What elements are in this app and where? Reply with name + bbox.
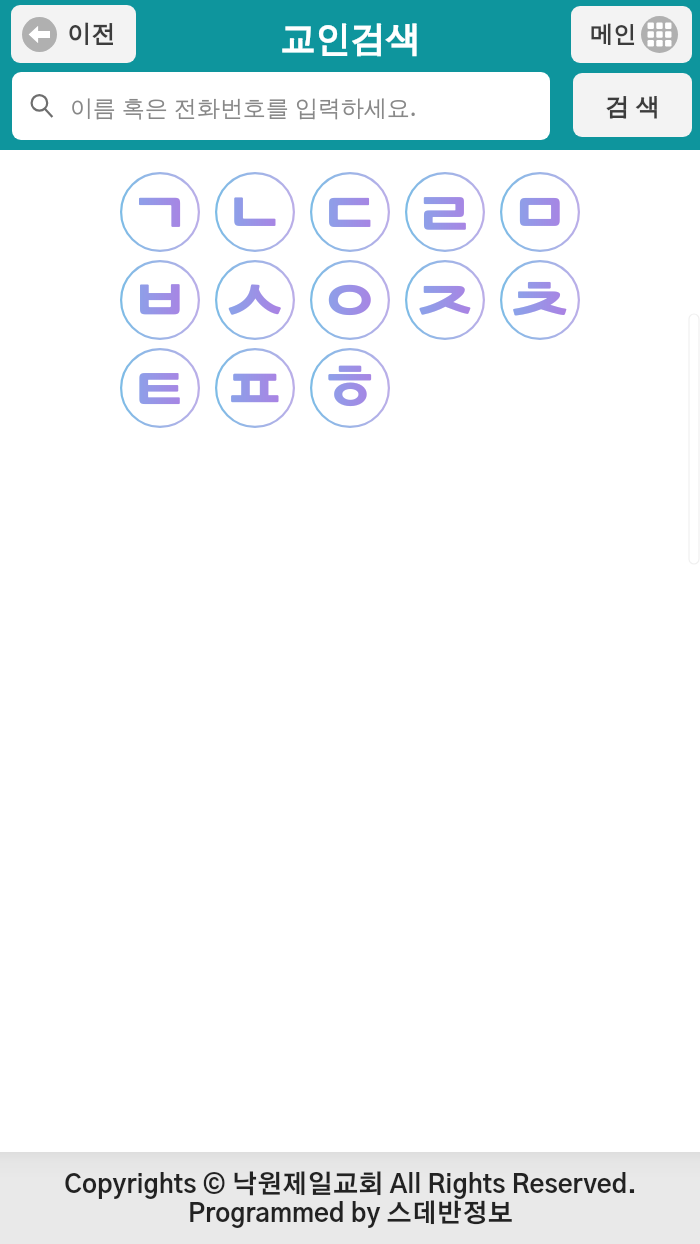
button[interactable]: ㄹ [397,168,492,256]
button[interactable]: ㄷ [302,168,397,256]
button[interactable]: 이전 [11,5,136,63]
staticText: 이름 혹은 전화번호를 입력하세요. [70,91,417,122]
button[interactable]: ㅁ [492,168,587,256]
button[interactable]: 검 색 [573,73,692,137]
button[interactable]: ㄴ [207,168,302,256]
button[interactable]: ㅎ [302,344,397,432]
staticText: ㅅ [220,264,290,337]
staticText: ㄹ [410,176,480,249]
button[interactable]: ㅌ [112,344,207,432]
staticText: ㄱ [125,176,195,249]
staticText: 교인검색 [280,17,420,61]
staticText: ㅊ [505,264,575,337]
button[interactable]: 메인 [571,6,692,63]
button[interactable]: ㅂ [112,256,207,344]
staticText: ㅂ [125,264,195,337]
button[interactable]: ㅅ [207,256,302,344]
staticText: ㅌ [125,352,195,425]
staticText: Programmed by 스데반정보 [188,1202,513,1227]
button[interactable]: ㅊ [492,256,587,344]
staticText: ㅍ [220,352,290,425]
staticText: ㄴ [220,176,290,249]
staticText: 메인 [590,20,636,49]
button[interactable]: ㄱ [112,168,207,256]
staticText: 검 색 [605,89,660,122]
staticText: ㅎ [315,352,385,425]
button[interactable]: ㅈ [397,256,492,344]
staticText: ㅈ [410,264,480,337]
button[interactable]: ㅇ [302,256,397,344]
staticText: 이전 [67,19,115,49]
staticText: ㅁ [505,176,575,249]
staticText: ㅇ [315,264,385,337]
button[interactable]: 이름 혹은 전화번호를 입력하세요. [12,72,550,140]
button[interactable]: ㅍ [207,344,302,432]
staticText: ㄷ [315,176,385,249]
staticText: Copyrights © 낙원제일교회 All Rights Reserved. [64,1173,637,1198]
